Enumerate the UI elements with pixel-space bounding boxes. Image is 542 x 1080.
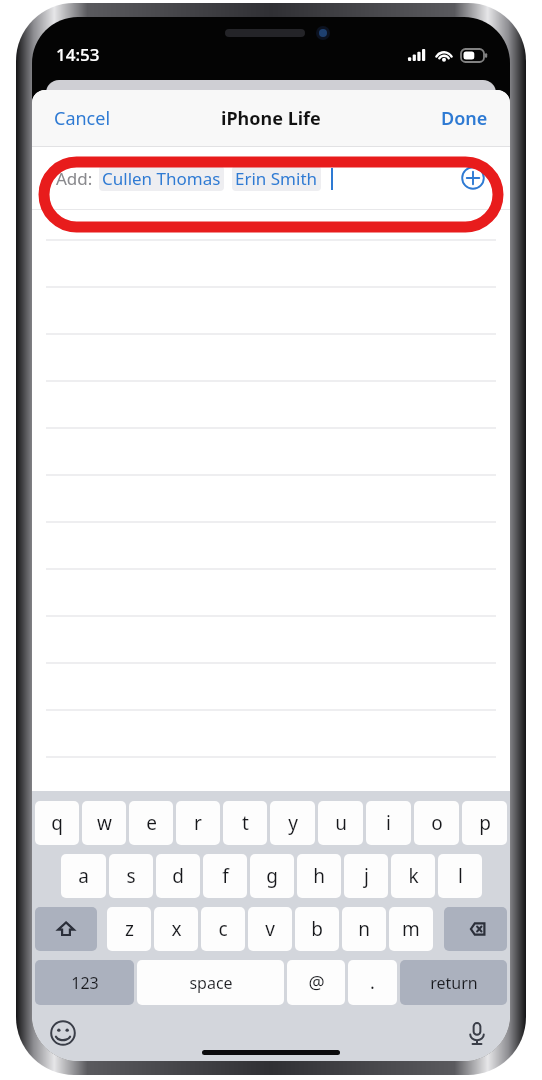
staticText: return: [430, 972, 478, 994]
staticText: z: [125, 916, 134, 942]
staticText: s: [126, 863, 136, 889]
button[interactable]: Cancel: [54, 106, 111, 131]
button[interactable]: b: [295, 907, 339, 951]
button[interactable]: u: [318, 801, 363, 845]
staticText: .: [370, 970, 375, 995]
staticText: c: [218, 916, 228, 942]
staticText: b: [311, 916, 323, 942]
staticText: r: [194, 810, 202, 836]
staticText: y: [288, 810, 298, 836]
button[interactable]: o: [414, 801, 459, 845]
button[interactable]: Done: [441, 106, 488, 131]
button[interactable]: Backspace: [444, 907, 507, 951]
button[interactable]: t: [223, 801, 267, 845]
button[interactable]: Add:: [32, 147, 510, 209]
staticText: 123: [71, 972, 99, 994]
staticText: m: [402, 916, 420, 942]
button[interactable]: Add contact: [458, 163, 488, 193]
button[interactable]: a: [61, 854, 106, 898]
staticText: Cullen Thomas: [102, 167, 221, 190]
staticText: j: [364, 863, 369, 889]
staticText: n: [358, 916, 370, 942]
button[interactable]: k: [391, 854, 435, 898]
button[interactable]: e: [129, 801, 173, 845]
staticText: Erin Smith: [235, 167, 318, 190]
staticText: u: [335, 810, 347, 836]
button[interactable]: x: [154, 907, 198, 951]
button[interactable]: y: [270, 801, 315, 845]
staticText: d: [172, 863, 184, 889]
staticText: k: [408, 863, 419, 889]
staticText: t: [242, 810, 249, 836]
button[interactable]: d: [156, 854, 200, 898]
button[interactable]: r: [176, 801, 220, 845]
button[interactable]: l: [438, 854, 482, 898]
button[interactable]: z: [107, 907, 151, 951]
staticText: 14:53: [56, 43, 100, 66]
button[interactable]: g: [250, 854, 294, 898]
staticText: a: [78, 863, 89, 889]
staticText: f: [222, 863, 229, 889]
button[interactable]: .: [348, 960, 397, 1005]
button[interactable]: m: [389, 907, 433, 951]
button[interactable]: return: [400, 960, 507, 1005]
staticText: o: [431, 810, 443, 836]
button[interactable]: q: [35, 801, 79, 845]
staticText: @: [308, 970, 325, 995]
button[interactable]: f: [203, 854, 247, 898]
button[interactable]: s: [109, 854, 153, 898]
button[interactable]: c: [201, 907, 245, 951]
staticText: l: [458, 863, 463, 889]
button[interactable]: w: [82, 801, 126, 845]
button[interactable]: p: [462, 801, 507, 845]
button[interactable]: Emoji: [46, 1016, 80, 1050]
staticText: g: [266, 863, 278, 889]
button[interactable]: j: [344, 854, 388, 898]
button[interactable]: Shift: [35, 907, 97, 951]
staticText: space: [189, 972, 233, 994]
button[interactable]: Dictation: [460, 1016, 494, 1050]
staticText: p: [479, 810, 491, 836]
staticText: x: [171, 916, 182, 942]
button[interactable]: i: [366, 801, 411, 845]
button[interactable]: n: [342, 907, 386, 951]
staticText: v: [265, 916, 275, 942]
button[interactable]: 123: [35, 960, 134, 1005]
button[interactable]: @: [287, 960, 345, 1005]
staticText: iPhone Life: [221, 106, 321, 131]
staticText: h: [313, 863, 325, 889]
staticText: Done: [441, 106, 488, 131]
staticText: q: [51, 810, 63, 836]
button[interactable]: v: [248, 907, 292, 951]
staticText: w: [97, 810, 112, 836]
staticText: i: [386, 810, 391, 836]
button[interactable]: h: [297, 854, 341, 898]
button[interactable]: space: [137, 960, 284, 1005]
staticText: Add:: [56, 167, 93, 190]
staticText: e: [146, 810, 157, 836]
staticText: Cancel: [54, 106, 111, 131]
